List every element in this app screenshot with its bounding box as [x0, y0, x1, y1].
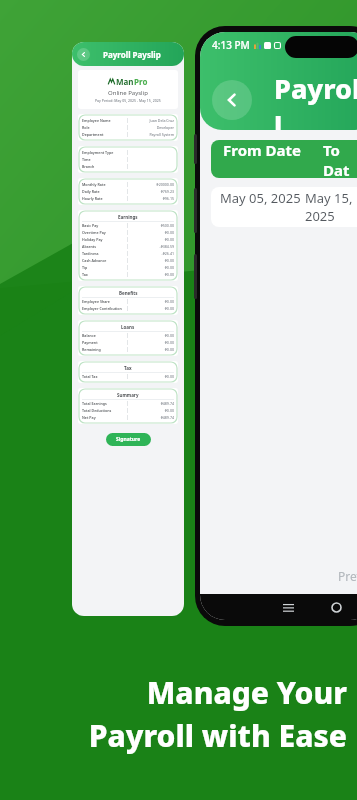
- staticText: ₱500.00: [128, 223, 174, 228]
- staticText: Earnings: [118, 214, 138, 220]
- staticText: Payroll with Ease: [88, 715, 347, 756]
- staticText: Holiday Pay: [82, 237, 127, 242]
- staticText: -₱384.59: [128, 244, 174, 249]
- staticText: Basic Pay: [82, 223, 127, 228]
- staticText: -₱26.41: [128, 251, 174, 256]
- staticText: Pay Period: May 05, 2025 - May 15, 2025: [95, 98, 161, 103]
- staticText: Loans: [121, 324, 135, 330]
- staticText: Role: [82, 125, 127, 130]
- staticText: Hourly Rate: [82, 196, 127, 201]
- staticText: ₱20000.00: [128, 182, 174, 187]
- staticText: ₱0.00: [128, 230, 174, 235]
- staticText: Tax: [82, 272, 127, 277]
- staticText: ₱0.00: [128, 340, 174, 345]
- staticText: Employee Share: [82, 299, 127, 304]
- staticText: Manage Your: [146, 672, 347, 713]
- button[interactable]: From Date: [211, 140, 357, 178]
- staticText: ₱0.00: [128, 306, 174, 311]
- staticText: ₱96.15: [128, 196, 174, 201]
- staticText: ₱0.00: [128, 374, 174, 379]
- button[interactable]: Recents: [278, 597, 298, 617]
- staticText: Signature: [116, 436, 141, 443]
- staticText: Man: [116, 76, 134, 87]
- staticText: ₱0.00: [128, 265, 174, 270]
- staticText: Net Pay: [82, 415, 127, 420]
- button[interactable]: Prev: [338, 568, 357, 584]
- staticText: ₱0.00: [128, 272, 174, 277]
- button[interactable]: Back: [77, 48, 90, 61]
- button[interactable]: Signature: [106, 433, 151, 446]
- staticText: Juan Dela Cruz: [128, 118, 174, 123]
- staticText: Payment: [82, 340, 127, 345]
- staticText: Payroll System: [128, 132, 174, 137]
- staticText: ₱0.00: [128, 299, 174, 304]
- staticText: May 15, 2025: [305, 189, 355, 225]
- staticText: From Date: [223, 140, 301, 160]
- staticText: ₱0.00: [128, 408, 174, 413]
- staticText: Remaining: [82, 347, 127, 352]
- staticText: Tardiness: [82, 251, 127, 256]
- staticText: Time: [82, 157, 127, 162]
- staticText: May 05, 2025: [220, 189, 301, 207]
- staticText: Total Tax: [82, 374, 127, 379]
- staticText: ₱489.74: [128, 415, 174, 420]
- button[interactable]: Home: [326, 597, 346, 617]
- staticText: Payroll: [274, 70, 357, 130]
- staticText: Overtime Pay: [82, 230, 127, 235]
- staticText: Summary: [117, 392, 139, 398]
- staticText: Balance: [82, 333, 127, 338]
- staticText: Employee Name: [82, 118, 127, 123]
- staticText: Department: [82, 132, 127, 137]
- staticText: Daily Rate: [82, 189, 127, 194]
- staticText: Benefits: [119, 290, 138, 296]
- staticText: Monthly Rate: [82, 182, 127, 187]
- staticText: Pro: [134, 76, 148, 87]
- staticText: To Date: [323, 140, 352, 178]
- staticText: Tip: [82, 265, 127, 270]
- staticText: ₱489.74: [128, 401, 174, 406]
- staticText: ₱0.00: [128, 258, 174, 263]
- staticText: Absents: [82, 244, 127, 249]
- staticText: Total Earnings: [82, 401, 127, 406]
- staticText: Tax: [124, 365, 132, 371]
- staticText: Employment Type: [82, 150, 127, 155]
- staticText: Total Deductions: [82, 408, 127, 413]
- staticText: Developer: [128, 125, 174, 130]
- button[interactable]: Back: [212, 80, 252, 120]
- staticText: Payroll Payslip: [103, 49, 161, 60]
- staticText: Cash Advance: [82, 258, 127, 263]
- staticText: Branch: [82, 164, 127, 169]
- staticText: 4:13 PM: [212, 38, 250, 52]
- staticText: ₱0.00: [128, 333, 174, 338]
- staticText: Online Payslip: [108, 89, 148, 97]
- staticText: ₱0.00: [128, 237, 174, 242]
- staticText: Employer Contribution: [82, 306, 127, 311]
- staticText: ₱769.23: [128, 189, 174, 194]
- staticText: ₱0.00: [128, 347, 174, 352]
